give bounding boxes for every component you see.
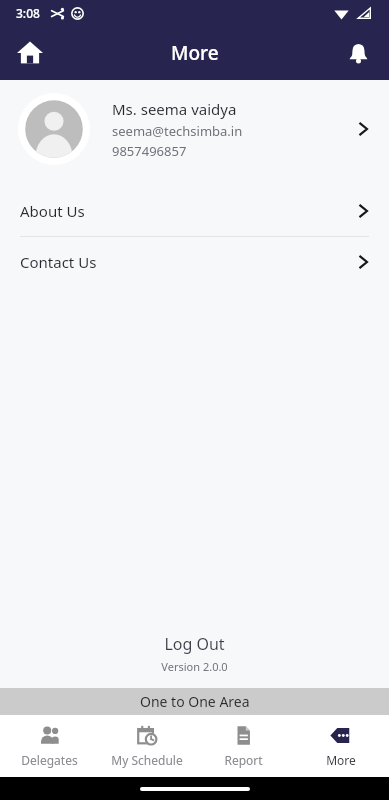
staticText: Report [224, 752, 263, 768]
staticText: Delegates [21, 752, 78, 768]
staticText: Log Out [164, 633, 225, 655]
staticText: Contact Us [20, 252, 352, 272]
staticText: 9857496857 [112, 142, 187, 160]
staticText: More [171, 40, 219, 66]
button[interactable]: Log Out [0, 633, 389, 688]
staticText: seema@techsimba.in [112, 122, 243, 140]
button[interactable]: More [292, 715, 389, 777]
button[interactable]: About Us [0, 186, 389, 236]
staticText: Ms. seema vaidya [112, 99, 237, 119]
staticText: More [326, 752, 356, 768]
staticText: Version 2.0.0 [161, 659, 228, 674]
button[interactable]: Notifications [335, 30, 381, 76]
staticText: About Us [20, 201, 352, 221]
button[interactable]: Ms. seema vaidya [0, 80, 389, 178]
staticText: One to One Area [140, 692, 250, 711]
button[interactable]: Contact Us [0, 237, 389, 287]
button[interactable]: My Schedule [98, 715, 195, 777]
button[interactable]: Report [195, 715, 292, 777]
button[interactable]: Delegates [0, 715, 98, 777]
staticText: My Schedule [111, 752, 183, 768]
button[interactable]: Home [6, 29, 54, 77]
staticText: 3:08 [16, 5, 40, 21]
